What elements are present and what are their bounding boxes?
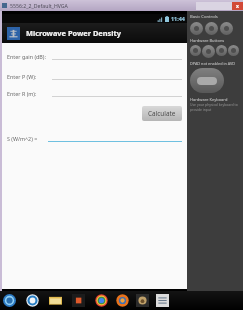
button[interactable]: Emulator button [190,22,203,35]
staticText: 5556:2_2_Default_HVGA [10,2,68,9]
button[interactable]: Result [48,131,182,142]
button[interactable]: D-pad [190,68,224,93]
staticText: Hardware Buttons [190,38,225,43]
button[interactable]: Emulator button [190,45,201,56]
staticText: Enter R (m): [7,90,37,97]
button[interactable]: Emulator window [155,293,170,308]
staticText: S (W/m^2) = [7,135,38,142]
staticText: 11:44 [171,15,185,22]
button[interactable]: Emulator button [205,22,218,35]
staticText: Calculate [148,109,176,118]
button[interactable]: App icon [7,27,20,40]
button[interactable]: Calculate [142,106,182,121]
button[interactable]: Enter gain (dB): [52,49,182,60]
button[interactable]: Emulator button [228,45,239,56]
staticText: Enter P (W): [7,73,37,80]
button[interactable]: Internet Explorer [25,293,40,308]
button[interactable]: Chrome [94,293,109,308]
staticText: Use your physical keyboard to provide in… [190,102,240,112]
staticText: x [236,3,239,10]
staticText: Enter gain (dB): [7,53,46,60]
button[interactable]: File Explorer [48,293,63,308]
staticText: Hardware Keyboard [190,97,228,102]
staticText: Basic Controls [190,14,218,20]
button[interactable]: Close [232,2,243,10]
staticText: DPAD not enabled in AVD [190,61,236,66]
button[interactable]: Emulator button [216,45,227,56]
button[interactable]: Emulator button [220,22,233,35]
button[interactable]: Application [135,293,150,308]
staticText: Microwave Power Density [26,28,121,38]
button[interactable]: Media Player [71,293,86,308]
button[interactable]: Firefox [115,293,130,308]
button[interactable]: Start [2,293,17,308]
button[interactable]: Emulator button [202,45,215,58]
button[interactable]: Enter R (m): [52,86,182,97]
button[interactable]: Enter P (W): [52,69,182,80]
